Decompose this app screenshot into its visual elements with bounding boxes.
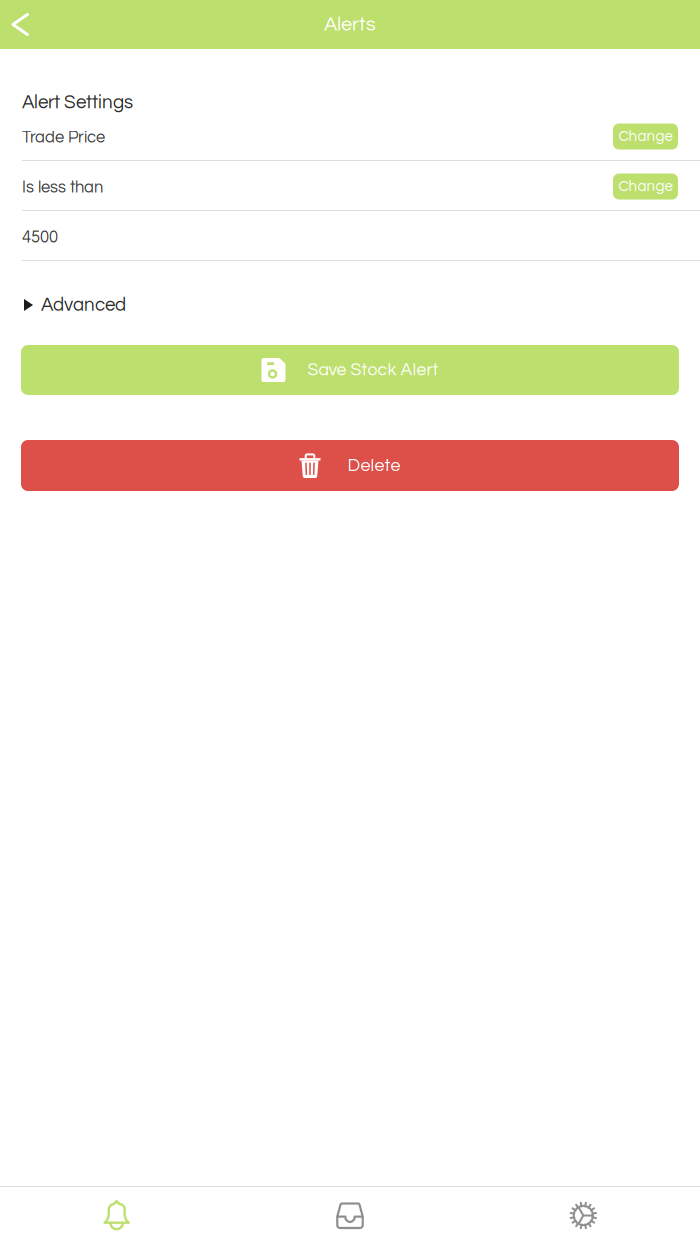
staticText: Alert Settings [22, 93, 133, 112]
staticText: Delete [347, 456, 400, 475]
button[interactable]: Back [0, 0, 47, 48]
staticText: Is less than [22, 179, 103, 196]
button[interactable]: Delete [21, 440, 679, 491]
staticText: Change [618, 179, 672, 194]
button[interactable]: Inbox [233, 1187, 467, 1244]
button[interactable]: Settings [467, 1187, 700, 1244]
staticText: Trade Price [22, 129, 105, 146]
button[interactable]: Advanced [0, 283, 700, 327]
button[interactable]: Change [613, 123, 678, 151]
staticText: Advanced [41, 295, 126, 315]
staticText: Save Stock Alert [307, 361, 438, 379]
button[interactable]: Change [613, 173, 678, 201]
staticText: 4500 [22, 229, 58, 246]
button[interactable]: Save Stock Alert [21, 345, 679, 395]
button[interactable]: Alerts [0, 1187, 233, 1244]
staticText: Alerts [324, 14, 376, 35]
staticText: Change [618, 129, 672, 144]
